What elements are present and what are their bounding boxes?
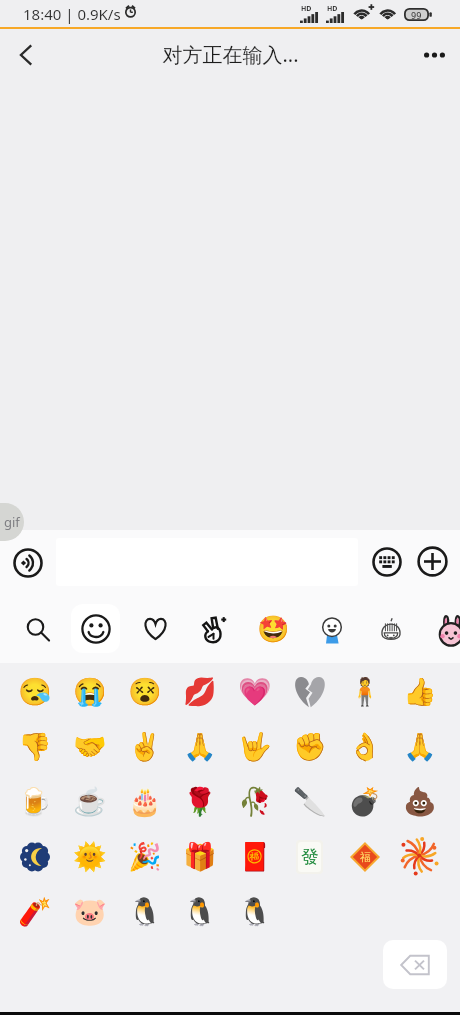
button[interactable]: 👎: [7, 719, 62, 774]
staticText: 💩: [403, 786, 437, 818]
button[interactable]: 🎉: [117, 829, 172, 884]
button[interactable]: 👍: [392, 664, 447, 719]
button[interactable]: 🌹: [172, 774, 227, 829]
button[interactable]: Keyboard: [372, 547, 402, 577]
button[interactable]: 💗: [227, 664, 282, 719]
button[interactable]: 福: [337, 829, 392, 884]
button[interactable]: 👌: [337, 719, 392, 774]
button[interactable]: ✊: [282, 719, 337, 774]
button[interactable]: More options: [411, 32, 457, 78]
button[interactable]: 🎁: [172, 829, 227, 884]
button[interactable]: 🐧: [227, 884, 282, 939]
button[interactable]: 💩: [392, 774, 447, 829]
button[interactable]: Sticker pack 3: [372, 610, 410, 648]
staticText: 🧨: [18, 896, 52, 928]
staticText: 👌: [348, 731, 382, 763]
button[interactable]: 🌞: [62, 829, 117, 884]
button[interactable]: [282, 664, 337, 719]
staticText: 🌹: [183, 786, 217, 818]
staticText: ☕: [73, 786, 107, 818]
staticText: 😪: [18, 676, 52, 708]
button[interactable]: Emoji: [71, 604, 120, 653]
staticText: 🐧: [128, 896, 162, 928]
staticText: 福: [360, 850, 371, 864]
staticText: 🐧: [183, 896, 217, 928]
button[interactable]: 😪: [7, 664, 62, 719]
staticText: 🎂: [128, 786, 162, 818]
staticText: 99: [411, 9, 422, 21]
button[interactable]: Voice message: [13, 548, 43, 578]
staticText: 🌞: [73, 841, 107, 873]
button[interactable]: Sticker pack 1: [254, 610, 292, 648]
button[interactable]: 😵: [117, 664, 172, 719]
button[interactable]: 發: [282, 829, 337, 884]
staticText: 😵: [128, 676, 162, 708]
staticText: 🙏: [403, 731, 437, 763]
staticText: gif: [4, 513, 20, 531]
button[interactable]: Back: [4, 33, 48, 77]
button[interactable]: 🍺: [7, 774, 62, 829]
button[interactable]: 🥀: [227, 774, 282, 829]
button[interactable]: [392, 829, 447, 884]
staticText: 👍: [403, 676, 437, 708]
staticText: ✌️: [128, 731, 162, 763]
button[interactable]: Search: [19, 611, 55, 647]
staticText: 👎: [18, 731, 52, 763]
button[interactable]: Sticker pack 4: [432, 610, 460, 648]
button[interactable]: Favorites: [136, 610, 174, 648]
button[interactable]: 🤝: [62, 719, 117, 774]
button[interactable]: 💣: [337, 774, 392, 829]
staticText: 🧍: [348, 676, 382, 708]
staticText: 🐧: [238, 896, 272, 928]
staticText: 🙏: [183, 731, 217, 763]
button[interactable]: 🔪: [282, 774, 337, 829]
staticText: 18:40 | 0.9K/s: [23, 4, 121, 24]
button[interactable]: 🐷: [62, 884, 117, 939]
staticText: 發: [301, 846, 319, 869]
staticText: 🎉: [128, 841, 162, 873]
staticText: 🐷: [73, 896, 107, 928]
staticText: 💋: [183, 676, 217, 708]
button[interactable]: More actions: [417, 546, 448, 577]
button[interactable]: GIF: [0, 503, 24, 541]
button[interactable]: Sticker packs: [194, 610, 232, 648]
button[interactable]: 🧍: [337, 664, 392, 719]
button[interactable]: [7, 829, 62, 884]
staticText: HD: [327, 4, 338, 14]
staticText: HD: [301, 4, 312, 14]
staticText: 🧧: [238, 841, 272, 873]
staticText: 对方正在输入...: [162, 41, 299, 68]
staticText: 🍺: [18, 786, 52, 818]
button[interactable]: 💋: [172, 664, 227, 719]
button[interactable]: Sticker pack 2: [313, 610, 351, 648]
button[interactable]: 🐧: [117, 884, 172, 939]
button[interactable]: ☕: [62, 774, 117, 829]
button[interactable]: 🤟: [227, 719, 282, 774]
button[interactable]: 🙏: [392, 719, 447, 774]
staticText: 🤩: [257, 614, 290, 644]
staticText: 😭: [73, 676, 107, 708]
staticText: 🔪: [293, 786, 327, 818]
button[interactable]: 🎂: [117, 774, 172, 829]
staticText: ✊: [293, 731, 327, 763]
button[interactable]: 🧨: [7, 884, 62, 939]
button[interactable]: ✌️: [117, 719, 172, 774]
staticText: 🤟: [238, 731, 272, 763]
button[interactable]: Backspace: [383, 940, 447, 989]
staticText: 💗: [238, 676, 272, 708]
staticText: 🎁: [183, 841, 217, 873]
button[interactable]: 🐧: [172, 884, 227, 939]
button[interactable]: 🧧: [227, 829, 282, 884]
staticText: 💣: [348, 786, 382, 818]
button[interactable]: 😭: [62, 664, 117, 719]
staticText: 🥀: [238, 786, 272, 818]
button[interactable]: 🙏: [172, 719, 227, 774]
staticText: 🤝: [73, 731, 107, 763]
